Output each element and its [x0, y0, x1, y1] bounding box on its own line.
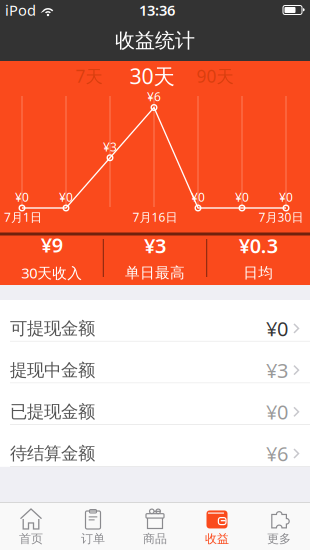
staticText: ¥6 — [266, 440, 288, 467]
staticText: 7天 — [75, 64, 102, 87]
staticText: 日均 — [243, 264, 273, 282]
button[interactable]: 首页 — [0, 503, 62, 550]
staticText: 13:36 — [139, 0, 175, 20]
button[interactable]: 可提现金额 — [0, 300, 310, 342]
staticText: 提现中金额 — [10, 359, 95, 381]
staticText: ¥0 — [266, 315, 288, 342]
button[interactable]: 商品 — [124, 503, 186, 550]
staticText: 已提现金额 — [10, 401, 95, 422]
staticText: 商品 — [143, 531, 167, 546]
staticText: 7月16日 — [132, 209, 177, 225]
staticText: ¥6 — [147, 88, 161, 104]
button[interactable]: 30天 — [125, 63, 179, 89]
staticText: ¥0 — [191, 189, 205, 205]
button[interactable]: 已提现金额 — [0, 383, 310, 425]
button[interactable]: 提现中金额 — [0, 342, 310, 383]
staticText: 更多 — [267, 531, 291, 546]
staticText: 90天 — [196, 64, 233, 87]
staticText: ¥0 — [279, 189, 293, 205]
staticText: 7月30日 — [258, 209, 303, 225]
staticText: 收益 — [205, 531, 229, 546]
button[interactable]: 待结算金额 — [0, 425, 310, 467]
staticText: ¥0 — [59, 189, 73, 205]
staticText: 可提现金额 — [10, 318, 95, 339]
staticText: 待结算金额 — [10, 443, 95, 464]
button[interactable]: 订单 — [62, 503, 124, 550]
staticText: 首页 — [19, 531, 43, 546]
staticText: ¥9 — [41, 231, 63, 258]
staticText: 收益统计 — [115, 28, 195, 53]
staticText: ¥0 — [266, 398, 288, 425]
staticText: 订单 — [81, 531, 105, 546]
button[interactable]: 90天 — [193, 64, 237, 88]
staticText: iPod — [5, 0, 36, 20]
staticText: ¥0 — [15, 189, 29, 205]
staticText: 单日最高 — [125, 264, 185, 282]
staticText: 30天收入 — [21, 263, 82, 282]
button[interactable]: 收益 — [186, 503, 248, 550]
staticText: ¥0.3 — [239, 232, 278, 259]
staticText: ¥3 — [266, 357, 288, 383]
staticText: 7月1日 — [4, 209, 42, 225]
button[interactable]: 更多 — [248, 503, 310, 550]
staticText: ¥3 — [144, 232, 166, 259]
staticText: 30天 — [129, 62, 174, 90]
staticText: ¥0 — [235, 189, 249, 205]
button[interactable]: 7天 — [67, 64, 111, 88]
staticText: ¥3 — [103, 139, 117, 155]
